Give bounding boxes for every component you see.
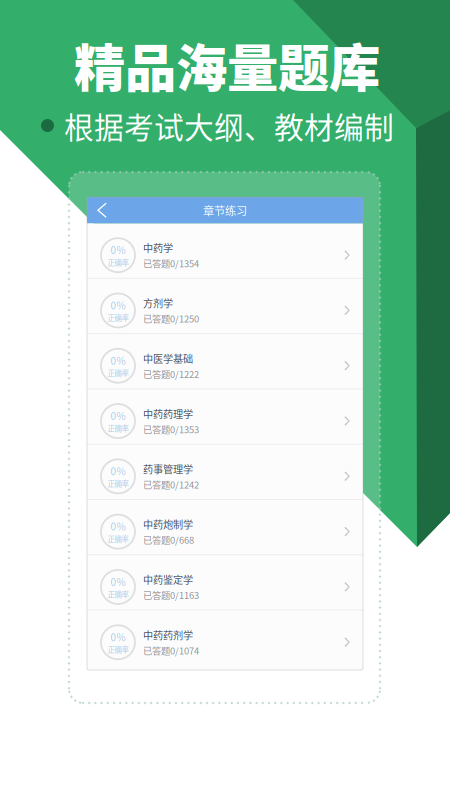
button[interactable]: 0%: [87, 500, 363, 555]
staticText: 中药药理学: [143, 406, 193, 421]
staticText: 0%: [110, 298, 125, 312]
staticText: 中药鉴定学: [143, 572, 193, 587]
staticText: 中药学: [143, 240, 173, 255]
button[interactable]: 0%: [87, 611, 363, 666]
button[interactable]: Back: [87, 198, 113, 223]
staticText: 正确率: [107, 423, 128, 434]
staticText: 已答题0/668: [143, 533, 194, 546]
button[interactable]: 0%: [87, 279, 363, 334]
staticText: 正确率: [107, 533, 128, 544]
button[interactable]: 0%: [87, 334, 363, 389]
button[interactable]: 0%: [87, 555, 363, 611]
staticText: 根据考试大纲、教材编制: [64, 104, 394, 147]
staticText: 方剂学: [143, 296, 173, 310]
staticText: 0%: [110, 519, 125, 533]
button[interactable]: 0%: [87, 223, 363, 279]
staticText: 正确率: [107, 478, 128, 489]
staticText: 0%: [110, 464, 125, 478]
staticText: 正确率: [107, 368, 128, 378]
staticText: 中医学基础: [143, 351, 193, 366]
staticText: 0%: [110, 574, 125, 589]
staticText: 已答题0/1222: [143, 367, 199, 381]
staticText: 已答题0/1242: [143, 478, 199, 491]
staticText: 已答题0/1250: [143, 312, 199, 325]
button[interactable]: 0%: [87, 445, 363, 500]
staticText: 0%: [110, 630, 125, 644]
staticText: 正确率: [107, 257, 128, 268]
staticText: 药事管理学: [143, 461, 193, 476]
staticText: 中药药剂学: [143, 627, 193, 642]
staticText: 章节练习: [203, 202, 247, 218]
staticText: 中药炮制学: [143, 517, 193, 531]
staticText: 0%: [110, 242, 125, 257]
staticText: 正确率: [107, 312, 128, 323]
button[interactable]: 0%: [87, 389, 363, 445]
staticText: 已答题0/1353: [143, 422, 199, 436]
staticText: 正确率: [107, 644, 128, 655]
staticText: 精品海量题库: [74, 27, 380, 102]
staticText: 0%: [110, 353, 125, 368]
staticText: 0%: [110, 408, 125, 423]
staticText: 已答题0/1354: [143, 256, 199, 270]
staticText: 已答题0/1163: [143, 588, 199, 602]
staticText: 已答题0/1074: [143, 644, 199, 657]
staticText: 正确率: [107, 589, 128, 600]
